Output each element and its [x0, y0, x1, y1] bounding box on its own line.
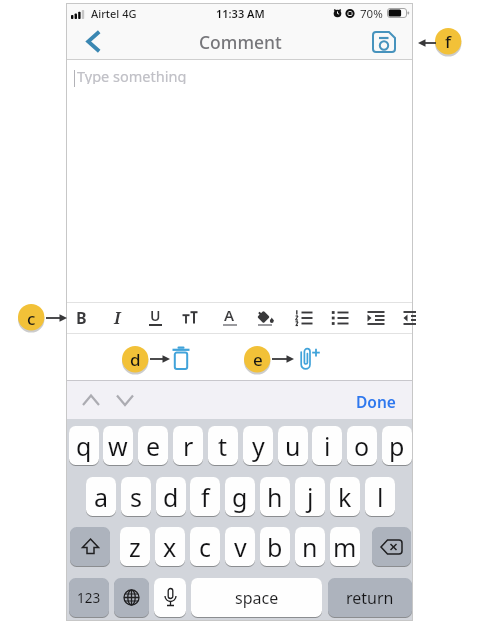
button[interactable]: I [106, 306, 128, 330]
staticText: c [199, 530, 212, 564]
staticText: b [267, 530, 283, 564]
staticText: h [267, 480, 283, 514]
button[interactable]: a [86, 477, 116, 516]
button[interactable] [154, 578, 186, 617]
button[interactable]: w [103, 426, 133, 465]
staticText: i [324, 429, 331, 463]
button[interactable]: t [208, 426, 238, 465]
button[interactable] [329, 306, 351, 330]
staticText: 123 [77, 589, 101, 607]
staticText: e [253, 348, 263, 371]
button[interactable]: i [312, 426, 342, 465]
staticText: t [218, 429, 228, 463]
button[interactable] [114, 578, 149, 617]
staticText: v [234, 530, 247, 564]
button[interactable]: o [347, 426, 377, 465]
button[interactable]: y [243, 426, 273, 465]
button[interactable]: g [225, 477, 255, 516]
button[interactable]: q [69, 426, 99, 465]
staticText: Done [356, 391, 396, 412]
button[interactable] [254, 306, 276, 330]
button[interactable]: k [330, 477, 360, 516]
button[interactable]: j [295, 477, 325, 516]
button[interactable] [370, 29, 398, 55]
button[interactable]: h [260, 477, 290, 516]
staticText: x [163, 530, 177, 564]
staticText: a [94, 480, 109, 514]
staticText: Airtel 4G [91, 6, 137, 20]
button[interactable] [297, 345, 321, 371]
button[interactable]: f [190, 477, 220, 516]
button[interactable] [372, 527, 411, 566]
button[interactable]: z [120, 527, 150, 566]
staticText: k [338, 480, 352, 514]
button[interactable] [112, 387, 138, 413]
staticText: A [224, 305, 235, 325]
button[interactable]: 123 [69, 578, 109, 617]
button[interactable]: B [70, 306, 92, 330]
button[interactable]: A [218, 305, 240, 325]
staticText: p [389, 429, 405, 463]
button[interactable]: m [330, 527, 360, 566]
button[interactable] [401, 306, 414, 330]
button[interactable]: U [144, 305, 166, 325]
button[interactable]: return [328, 578, 412, 617]
staticText: o [354, 429, 370, 463]
staticText: n [302, 530, 318, 564]
staticText: space [235, 587, 279, 609]
button[interactable]: b [260, 527, 290, 566]
button[interactable]: v [225, 527, 255, 566]
staticText: z [129, 530, 141, 564]
staticText: Type something [77, 66, 187, 84]
staticText: l [377, 480, 384, 514]
staticText: j [307, 480, 314, 514]
staticText: d [163, 480, 179, 514]
staticText: f [445, 30, 452, 53]
staticText: f [201, 480, 210, 514]
staticText: e [146, 429, 161, 463]
button[interactable]: d [156, 477, 186, 516]
button[interactable]: s [121, 477, 151, 516]
button[interactable]: e [138, 426, 168, 465]
staticText: c [27, 307, 36, 330]
staticText: q [76, 429, 92, 463]
staticText: B [76, 307, 87, 329]
staticText: I [114, 307, 121, 329]
button[interactable] [168, 344, 194, 372]
staticText: w [108, 429, 128, 463]
button[interactable]: p [382, 426, 412, 465]
button[interactable]: n [295, 527, 325, 566]
button[interactable]: c [190, 527, 220, 566]
staticText: s [130, 480, 142, 514]
button[interactable] [293, 306, 315, 330]
button[interactable]: Done [341, 388, 396, 414]
staticText: g [232, 480, 248, 514]
button[interactable]: r [173, 426, 203, 465]
staticText: 11:33 AM [216, 6, 265, 20]
button[interactable]: l [365, 477, 395, 516]
button[interactable] [365, 306, 387, 330]
button[interactable] [80, 27, 106, 55]
staticText: 70% [360, 6, 383, 20]
staticText: U [150, 306, 161, 325]
button[interactable] [78, 387, 104, 413]
staticText: m [333, 530, 357, 564]
button[interactable] [179, 306, 201, 330]
staticText: return [346, 587, 394, 609]
button[interactable]: x [155, 527, 185, 566]
staticText: Comment [199, 30, 282, 53]
staticText: u [285, 429, 301, 463]
button[interactable]: u [278, 426, 308, 465]
staticText: y [252, 429, 265, 463]
button[interactable]: space [191, 578, 322, 617]
staticText: d [130, 348, 141, 371]
staticText: r [183, 429, 194, 463]
button[interactable] [70, 527, 110, 566]
